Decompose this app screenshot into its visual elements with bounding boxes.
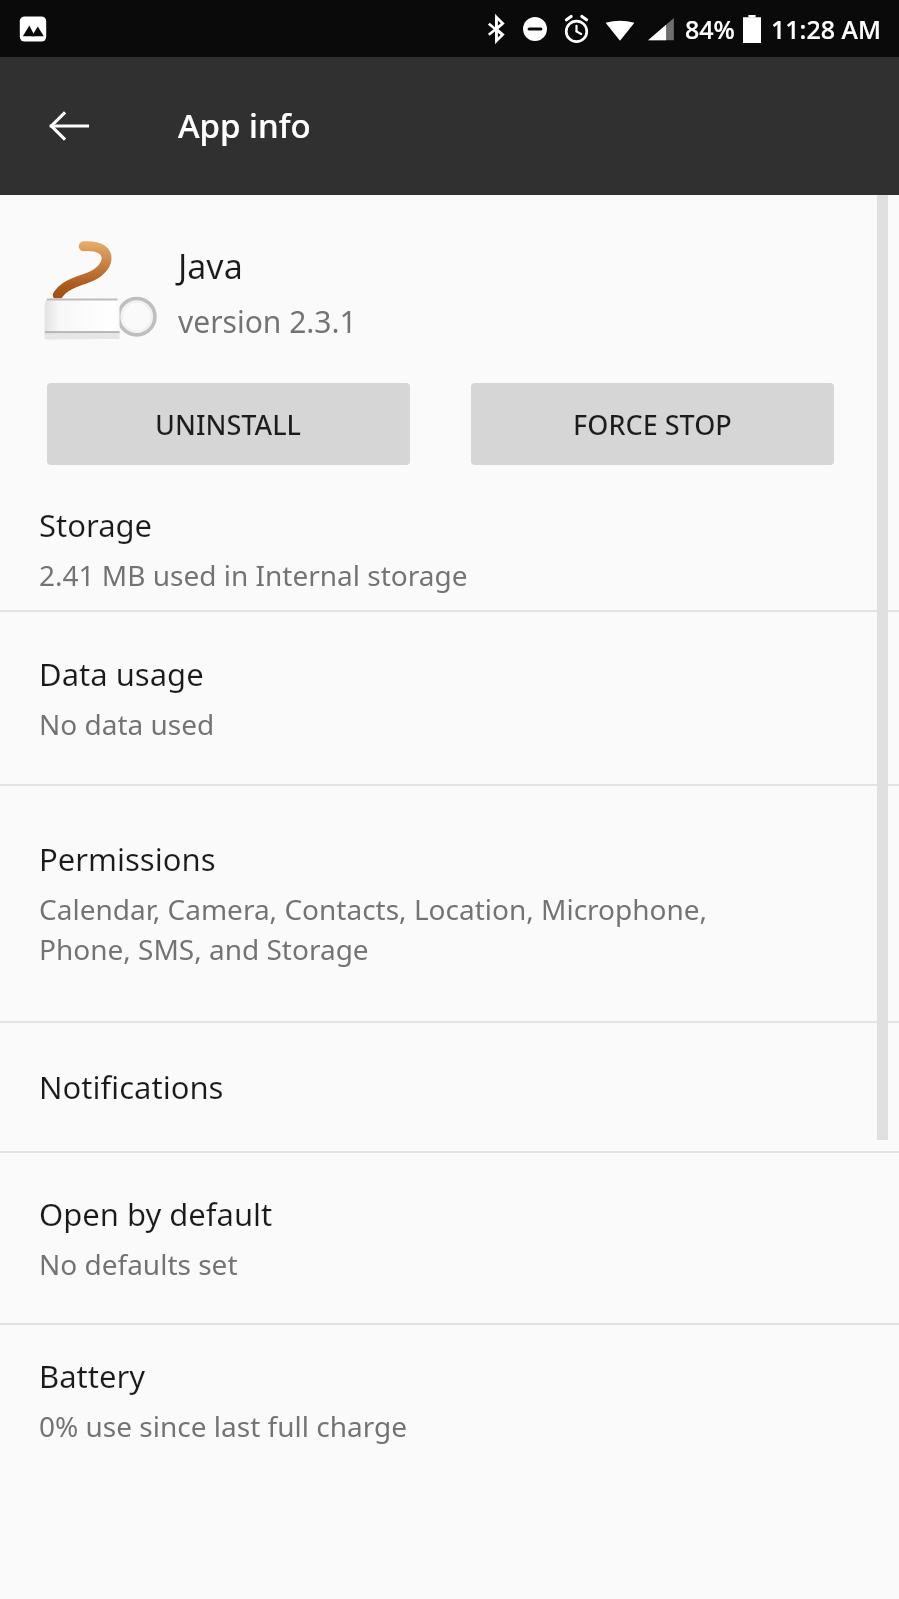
staticText: Calendar, Camera, Contacts, Location, Mi… — [39, 890, 708, 969]
staticText: Java — [178, 243, 243, 289]
staticText: Open by default — [39, 1193, 273, 1235]
button[interactable]: Data usage — [0, 612, 899, 784]
button[interactable]: Notifications — [0, 1023, 899, 1151]
staticText: App info — [178, 103, 311, 148]
staticText: Notifications — [39, 1066, 224, 1108]
button[interactable]: FORCE STOP — [471, 383, 834, 465]
staticText: UNINSTALL — [155, 406, 302, 443]
staticText: Battery — [39, 1355, 146, 1397]
staticText: No defaults set — [39, 1245, 238, 1283]
staticText: Data usage — [39, 653, 204, 695]
staticText: 2.41 MB used in Internal storage — [39, 556, 468, 594]
button[interactable]: UNINSTALL — [47, 383, 410, 465]
staticText: 11:28 AM — [771, 12, 881, 46]
staticText: 0% use since last full charge — [39, 1407, 407, 1445]
staticText: Permissions — [39, 838, 216, 880]
staticText: Storage — [39, 504, 153, 546]
button[interactable]: Battery — [0, 1325, 899, 1475]
staticText: 84% — [685, 12, 735, 46]
staticText: No data used — [39, 705, 215, 743]
button[interactable]: Open by default — [0, 1153, 899, 1323]
staticText: version 2.3.1 — [178, 301, 357, 342]
button[interactable]: Storage — [0, 488, 899, 610]
button[interactable]: Back — [25, 82, 113, 170]
staticText: FORCE STOP — [573, 406, 732, 443]
button[interactable]: Permissions — [0, 786, 899, 1021]
